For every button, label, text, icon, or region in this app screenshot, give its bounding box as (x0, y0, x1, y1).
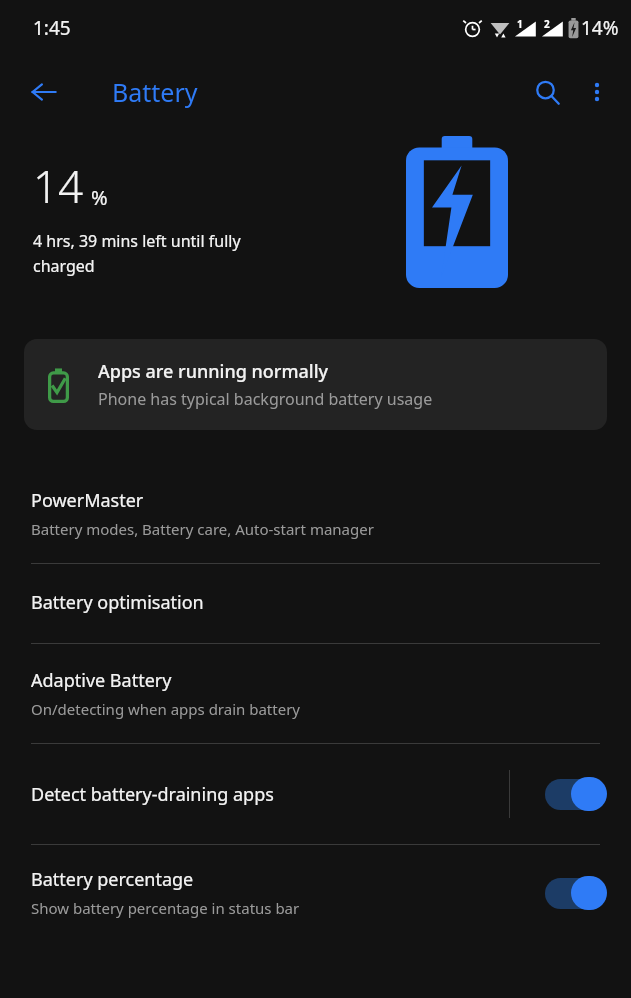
button[interactable]: Search (521, 66, 573, 118)
staticText: 1 (517, 17, 523, 31)
button[interactable]: PowerMaster (0, 464, 631, 563)
staticText: 1:45 (33, 15, 71, 41)
staticText: Phone has typical background battery usa… (98, 388, 433, 410)
staticText: 14% (581, 15, 619, 41)
button[interactable]: Battery percentage (0, 845, 631, 940)
staticText: Adaptive Battery (31, 668, 172, 693)
button[interactable]: Toggle (545, 876, 607, 910)
staticText: 2 (544, 17, 550, 31)
button[interactable]: Detect battery-draining apps (0, 744, 631, 844)
staticText: Battery modes, Battery care, Auto-start … (31, 519, 374, 539)
staticText: Battery (112, 75, 198, 109)
button[interactable]: More options (573, 68, 621, 116)
button[interactable]: Apps are running normally (24, 339, 607, 430)
staticText: Detect battery-draining apps (31, 782, 274, 807)
button[interactable]: Adaptive Battery (0, 644, 631, 743)
button[interactable]: Back (20, 68, 68, 116)
staticText: Show battery percentage in status bar (31, 898, 300, 918)
staticText: 14 (33, 156, 84, 216)
staticText: On/detecting when apps drain battery (31, 699, 300, 719)
staticText: PowerMaster (31, 488, 144, 513)
staticText: 4 hrs, 39 mins left until fully charged (33, 230, 241, 276)
button[interactable]: Battery optimisation (0, 564, 631, 643)
button[interactable]: Toggle (545, 777, 607, 811)
staticText: Apps are running normally (98, 359, 329, 384)
staticText: % (91, 184, 108, 211)
staticText: Battery optimisation (31, 590, 204, 615)
staticText: Battery percentage (31, 867, 194, 892)
